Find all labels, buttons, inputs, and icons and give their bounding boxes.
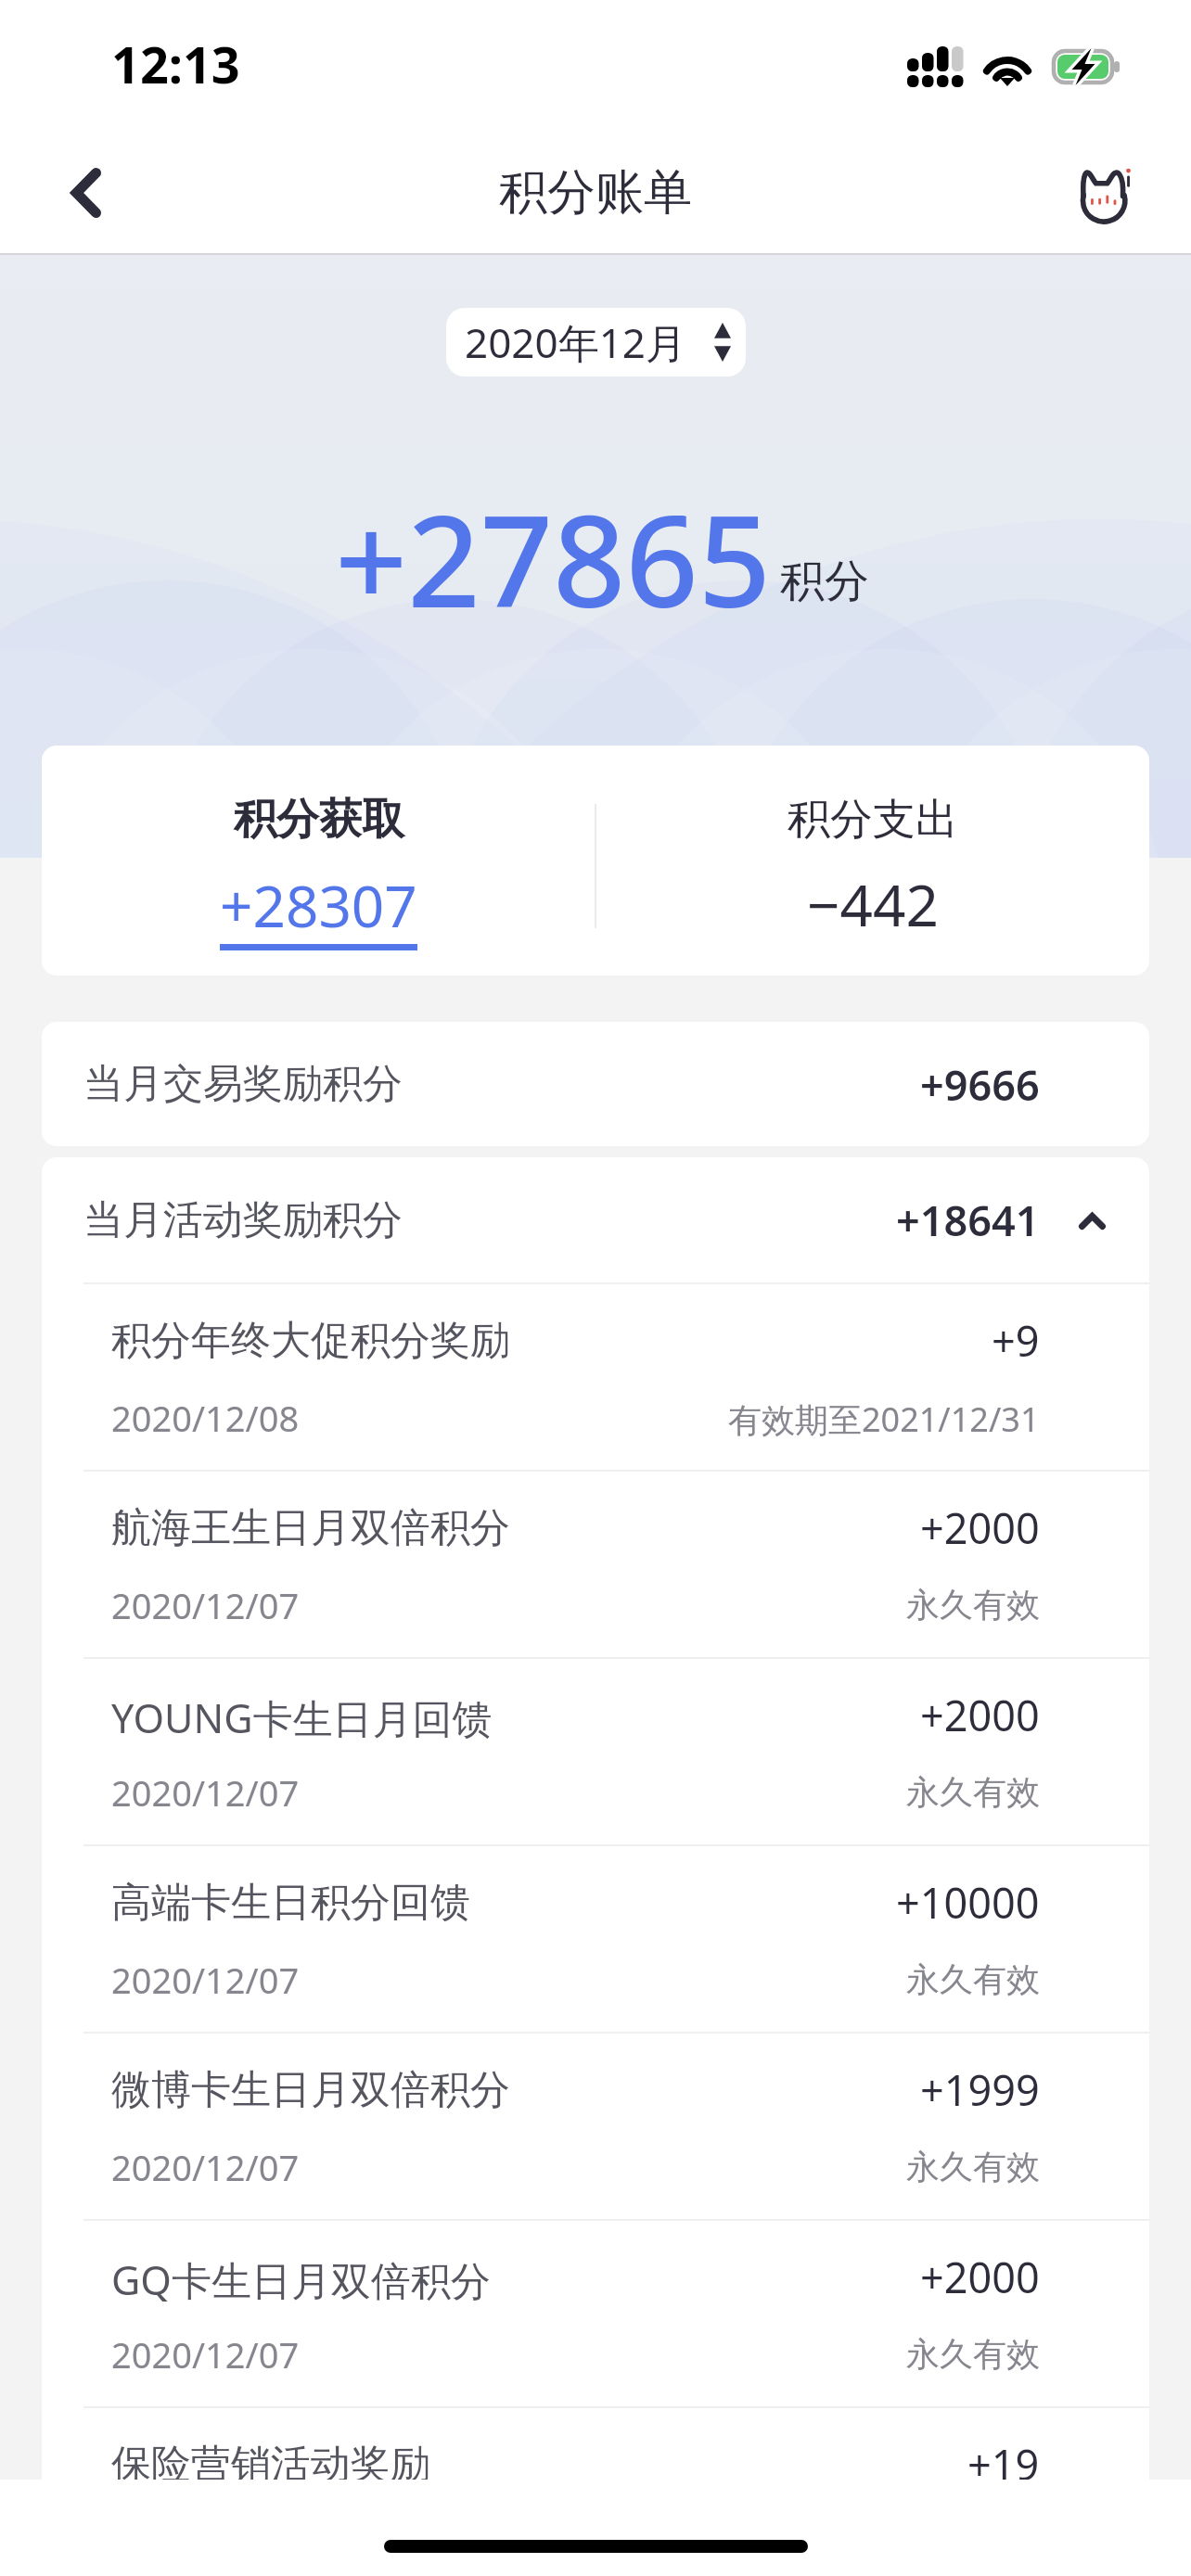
staticText: +18641 [896,1192,1040,1248]
staticText: −442 [807,865,939,943]
staticText: 2020/12/07 [111,1581,300,1629]
other: Collapse [1079,1213,1106,1230]
staticText: 航海王生日月双倍积分 [111,1503,510,1553]
button[interactable]: Back [0,132,121,253]
staticText: +9666 [920,1056,1040,1113]
staticText: +1999 [920,2061,1040,2118]
staticText: +9 [992,1312,1040,1369]
staticText: 积分 [780,554,869,609]
staticText: YOUNG卡生日月回馈 [111,1690,493,1745]
staticText: +27865 [335,472,772,645]
staticText: 永久有效 [906,1771,1040,1813]
button[interactable]: 积分年终大促积分奖励 [42,1282,1149,1470]
staticText: 微博卡生日月双倍积分 [111,2065,510,2115]
button[interactable]: 2020年12月 [446,308,746,376]
staticText: +2000 [920,1687,1040,1743]
button[interactable]: GQ卡生日月双倍积分 [42,2219,1149,2406]
staticText: GQ卡生日月双倍积分 [111,2252,491,2307]
staticText: +19 [967,2436,1040,2493]
button[interactable]: 高端卡生日积分回馈 [42,1844,1149,2032]
button[interactable]: 当月交易奖励积分 [42,1022,1149,1146]
staticText: 当月交易奖励积分 [83,1059,403,1109]
staticText: 积分账单 [499,162,692,223]
staticText: 2020/12/07 [111,2330,300,2378]
staticText: +2000 [920,2249,1040,2305]
button[interactable]: 保险营销活动奖励 [42,2406,1149,2511]
staticText: 2020/12/07 [111,2143,300,2191]
button[interactable]: YOUNG卡生日月回馈 [42,1657,1149,1844]
staticText: 永久有效 [906,2333,1040,2375]
staticText: 永久有效 [906,1958,1040,2000]
staticText: 12:13 [111,30,240,98]
staticText: 积分支出 [788,793,958,847]
staticText: +28307 [220,866,417,944]
button[interactable]: 积分支出 [595,746,1149,976]
button[interactable]: Customer service [1070,132,1191,253]
staticText: 积分获取 [234,793,404,847]
staticText: 2020/12/07 [111,1956,300,2004]
button[interactable]: 航海王生日月双倍积分 [42,1470,1149,1657]
staticText: +2000 [920,1499,1040,1556]
staticText: 2020年12月 [465,314,687,370]
staticText: 高端卡生日积分回馈 [111,1878,470,1928]
button[interactable]: 微博卡生日月双倍积分 [42,2032,1149,2219]
staticText: 2020/12/07 [111,1768,300,1817]
staticText: 当月活动奖励积分 [83,1195,403,1245]
staticText: 永久有效 [906,1584,1040,1626]
staticText: 永久有效 [906,2146,1040,2187]
staticText: 2020/12/08 [111,1394,300,1442]
staticText: 有效期至2021/12/31 [728,1396,1040,1442]
button[interactable]: 当月活动奖励积分 [42,1157,1149,1282]
button[interactable]: 积分获取 [42,746,595,976]
staticText: 积分年终大促积分奖励 [111,1316,510,1366]
staticText: 保险营销活动奖励 [111,2440,430,2490]
staticText: +10000 [896,1874,1040,1931]
